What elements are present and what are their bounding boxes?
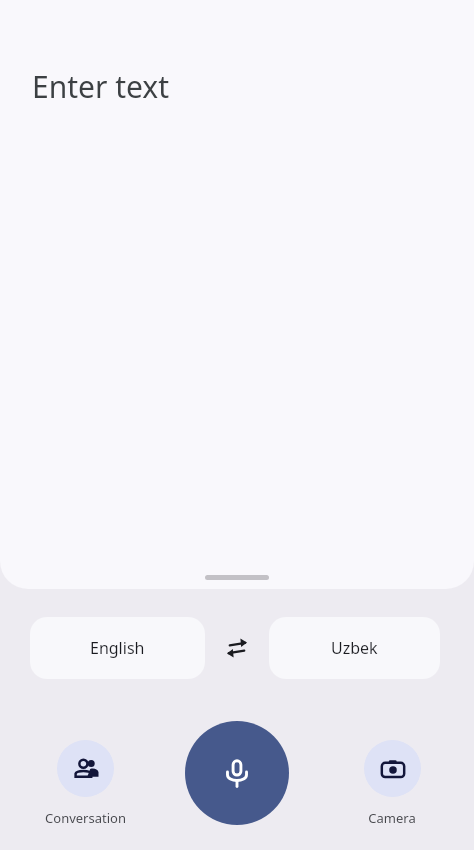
staticText: Enter text (32, 66, 170, 107)
staticText: English (90, 637, 145, 659)
staticText: Uzbek (331, 637, 378, 659)
staticText: Conversation (45, 809, 126, 827)
button[interactable]: English (30, 617, 205, 679)
button[interactable]: Speak (185, 721, 289, 825)
button[interactable]: Conversation (30, 740, 140, 827)
button[interactable]: Swap languages (205, 617, 269, 679)
button[interactable]: Camera (337, 740, 447, 827)
button[interactable]: Uzbek (269, 617, 440, 679)
staticText: Camera (368, 809, 416, 827)
button[interactable]: Enter text (0, 0, 474, 589)
